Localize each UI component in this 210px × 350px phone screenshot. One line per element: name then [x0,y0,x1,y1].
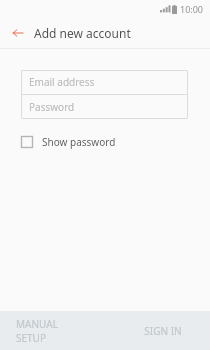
staticText: Password [29,100,75,114]
staticText: Show password [42,135,116,149]
button[interactable]: Show password [21,135,116,149]
button[interactable]: Back [8,23,28,43]
staticText: Add new account [34,25,131,41]
staticText: MANUAL [16,317,58,331]
button[interactable]: Email address [21,70,188,94]
staticText: Email address [29,75,95,89]
button[interactable]: SIGN IN [126,311,200,350]
button[interactable]: Password [21,95,188,119]
staticText: 10:00 [180,3,204,15]
button[interactable]: MANUAL [16,311,88,350]
staticText: SIGN IN [144,324,182,338]
staticText: SETUP [16,331,46,345]
